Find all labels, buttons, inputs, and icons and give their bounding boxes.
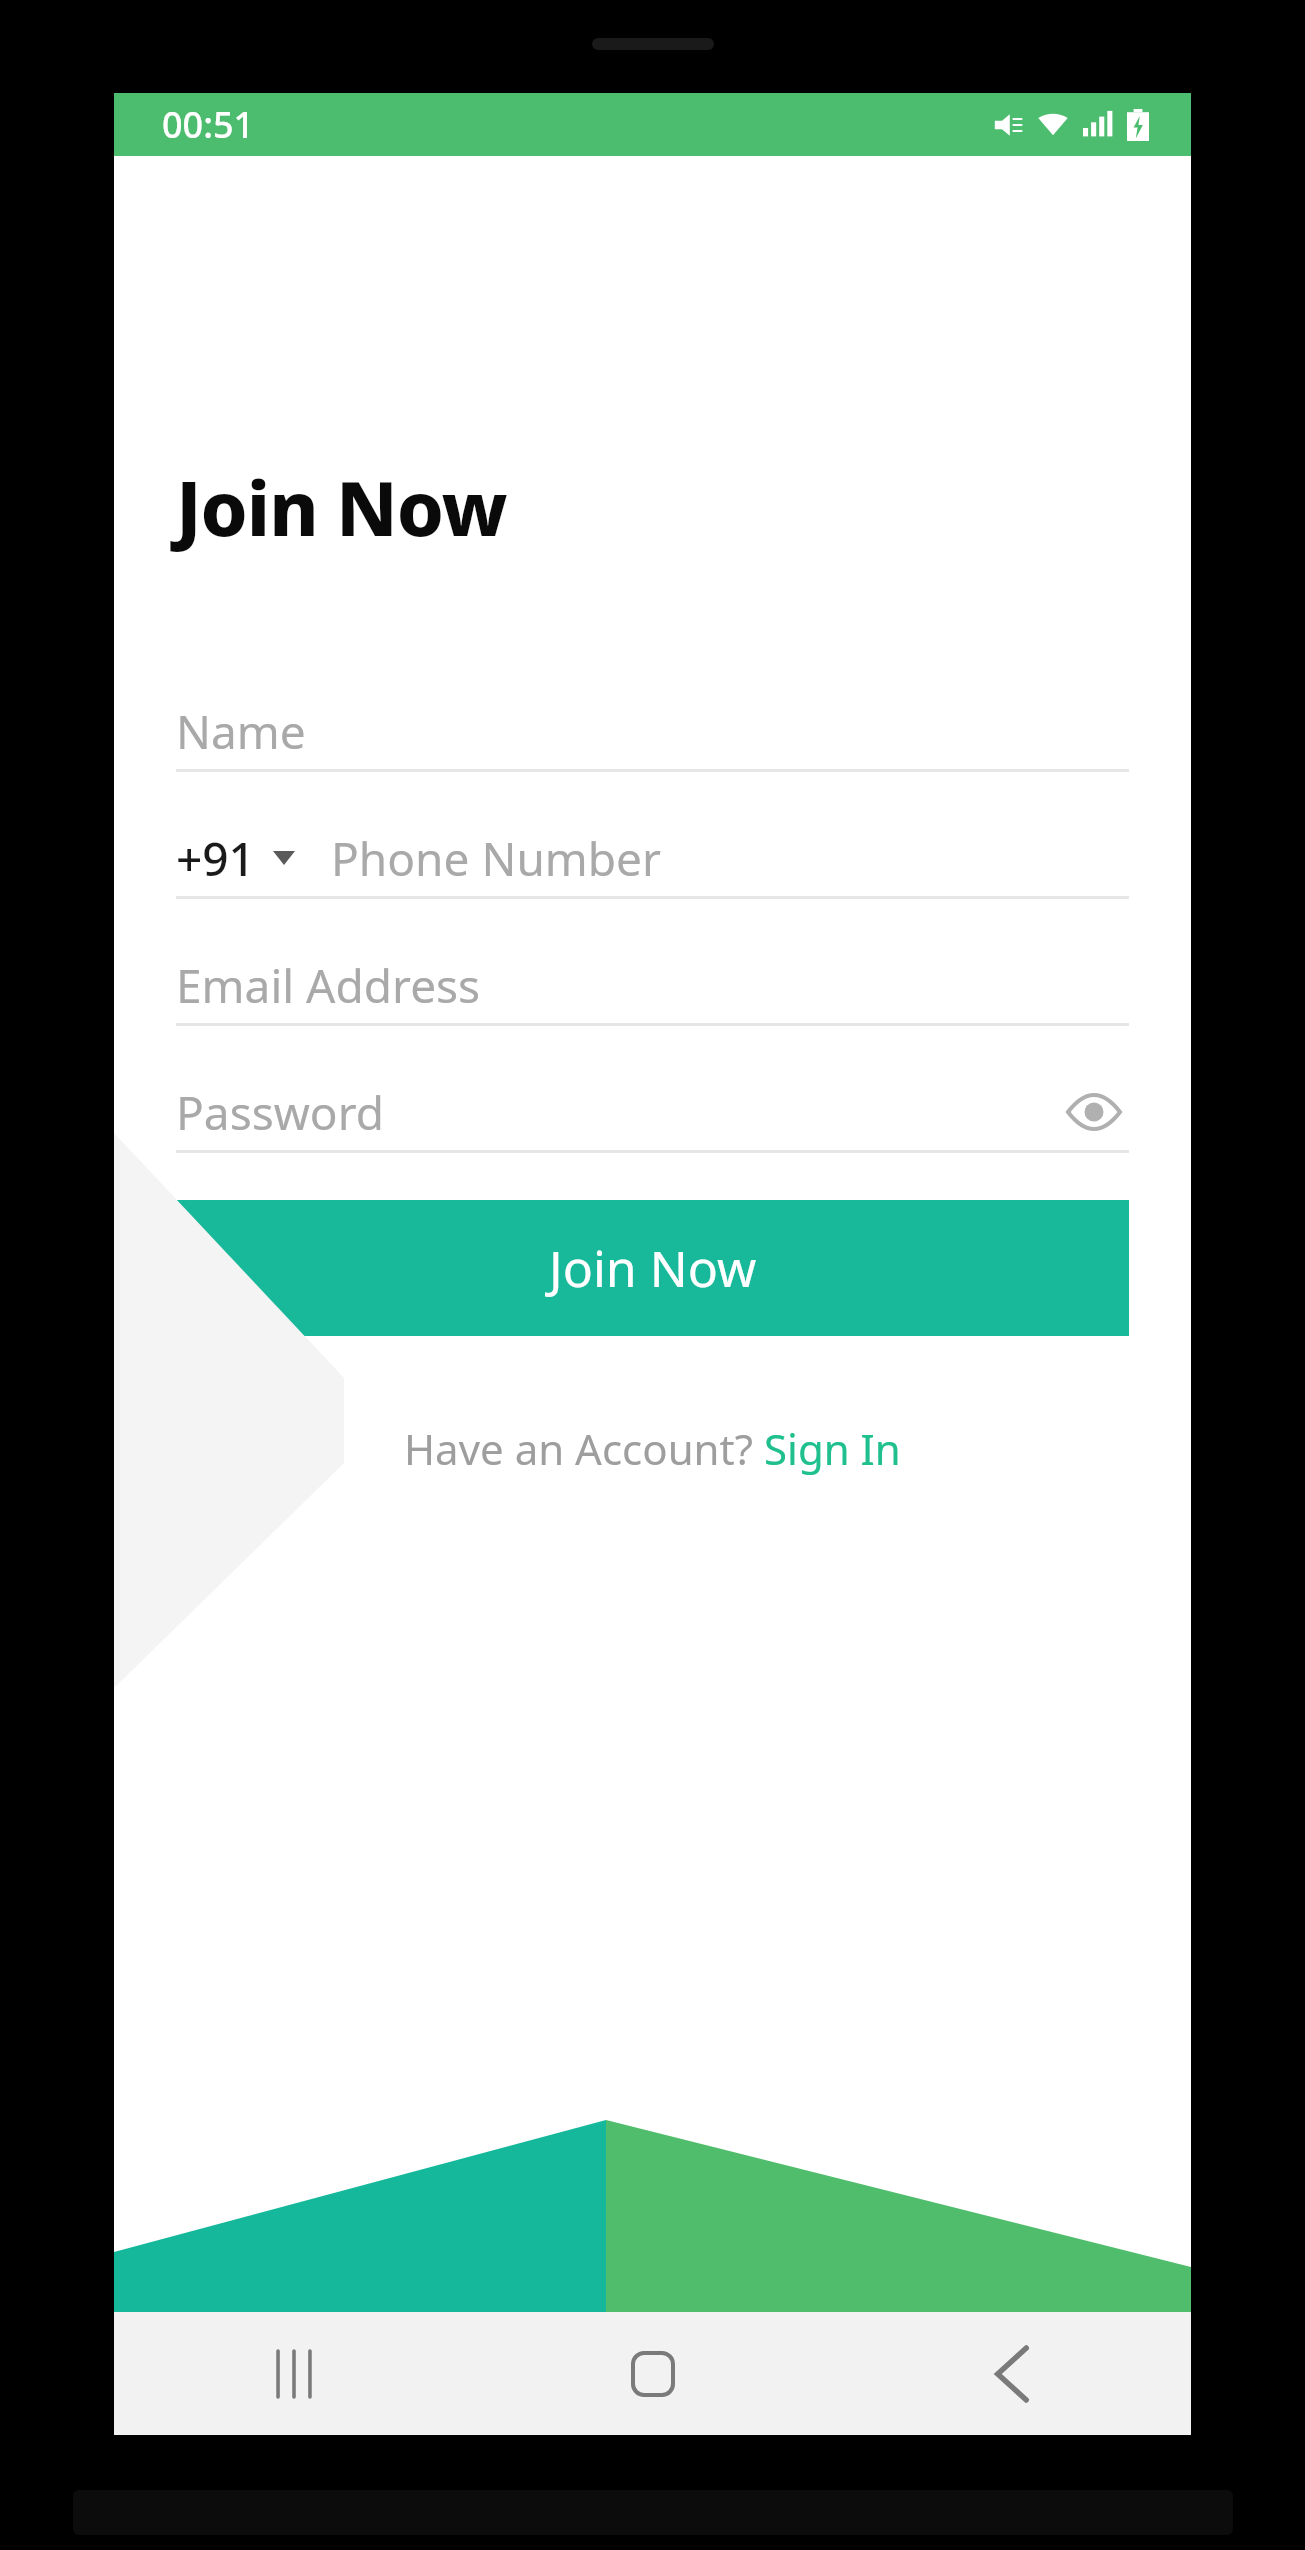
staticText: 00:51 (162, 100, 255, 149)
staticText: Join Now (549, 1234, 757, 1302)
button[interactable]: +91 (176, 820, 1129, 899)
button[interactable]: Join Now (176, 1200, 1129, 1336)
button[interactable]: Home (473, 2312, 832, 2435)
button[interactable]: Password (176, 1074, 1059, 1150)
button[interactable]: Back (832, 2312, 1191, 2435)
staticText: Sign In (764, 1420, 901, 1477)
staticText: Have an Account? (404, 1420, 764, 1477)
staticText: Join Now (176, 456, 507, 558)
staticText: Name (176, 700, 306, 763)
button[interactable]: Name (176, 693, 1129, 772)
staticText: Phone Number (331, 827, 662, 890)
staticText: Password (176, 1081, 385, 1144)
button[interactable]: Email Address (176, 947, 1129, 1026)
button[interactable]: Have an Account? (404, 1420, 901, 1477)
button[interactable]: Show password (1059, 1077, 1129, 1147)
staticText: Email Address (176, 954, 481, 1017)
staticText: +91 (176, 827, 255, 890)
button[interactable]: Recent apps (114, 2312, 473, 2435)
